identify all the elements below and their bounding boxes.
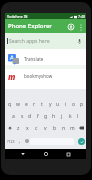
button[interactable]: ?123: [5, 135, 16, 147]
staticText: Search apps here: [9, 38, 50, 45]
button[interactable]: x: [23, 122, 32, 134]
staticText: Phone Explorer: [8, 22, 52, 30]
button[interactable]: o: [70, 98, 78, 110]
staticText: k: [69, 113, 72, 120]
staticText: w: [16, 101, 20, 108]
staticText: c: [35, 125, 38, 132]
staticText: j: [61, 113, 63, 120]
staticText: my: [8, 71, 19, 82]
button[interactable]: c: [32, 122, 41, 134]
button[interactable]: Account: [65, 21, 76, 32]
button[interactable]: a: [9, 110, 18, 122]
button[interactable]: l: [74, 110, 82, 122]
staticText: d: [28, 113, 32, 120]
button[interactable]: m: [68, 122, 77, 134]
button[interactable]: ,: [16, 135, 23, 147]
button[interactable]: f: [34, 110, 42, 122]
button[interactable]: q: [5, 98, 14, 110]
staticText: y: [49, 101, 52, 108]
button[interactable]: Voice search: [75, 37, 83, 45]
staticText: 7:48: [78, 14, 85, 19]
staticText: a: [12, 113, 15, 120]
button[interactable]: j: [58, 110, 66, 122]
button[interactable]: Enter: [76, 136, 86, 146]
staticText: p: [80, 101, 84, 108]
staticText: ,: [19, 138, 21, 145]
staticText: Vodafone IN: [7, 14, 28, 19]
button[interactable]: Emoji: [23, 135, 30, 147]
button[interactable]: t: [38, 98, 46, 110]
button[interactable]: Recents: [63, 149, 73, 159]
staticText: f: [37, 113, 39, 120]
button[interactable]: Back: [18, 149, 28, 159]
button[interactable]: s: [18, 110, 26, 122]
staticText: s: [21, 113, 24, 120]
button[interactable]: More options: [76, 22, 86, 32]
button[interactable]: d: [26, 110, 34, 122]
staticText: v: [44, 125, 47, 132]
staticText: o: [72, 101, 76, 108]
staticText: Translate: [24, 56, 44, 62]
button[interactable]: v: [41, 122, 50, 134]
button[interactable]: p: [78, 98, 86, 110]
button[interactable]: i: [62, 98, 70, 110]
button[interactable]: h: [50, 110, 58, 122]
button[interactable]: k: [66, 110, 74, 122]
button[interactable]: g: [42, 110, 50, 122]
staticText: q: [8, 101, 12, 108]
staticText: z: [17, 125, 20, 132]
staticText: m: [70, 125, 75, 132]
staticText: i: [65, 101, 67, 108]
button[interactable]: r: [30, 98, 38, 110]
button[interactable]: y: [46, 98, 54, 110]
staticText: t: [41, 101, 43, 108]
staticText: u: [56, 101, 60, 108]
staticText: g: [44, 113, 48, 120]
button[interactable]: Home: [41, 149, 51, 159]
staticText: n: [62, 125, 66, 132]
staticText: b: [53, 125, 57, 132]
button[interactable]: my: [5, 69, 86, 82]
staticText: h: [52, 113, 56, 120]
button[interactable]: e: [22, 98, 30, 110]
staticText: x: [26, 125, 29, 132]
staticText: l: [77, 113, 79, 120]
button[interactable]: Backspace: [77, 122, 86, 134]
staticText: r: [33, 101, 36, 108]
button[interactable]: Translate: [5, 52, 86, 65]
button[interactable]: Shift: [5, 122, 14, 134]
button[interactable]: b: [50, 122, 59, 134]
button[interactable]: n: [59, 122, 68, 134]
staticText: bookmyshow: [24, 73, 53, 79]
staticText: ?123: [7, 139, 15, 144]
button[interactable]: z: [14, 122, 23, 134]
staticText: e: [25, 101, 28, 108]
button[interactable]: u: [54, 98, 62, 110]
button[interactable]: w: [14, 98, 22, 110]
